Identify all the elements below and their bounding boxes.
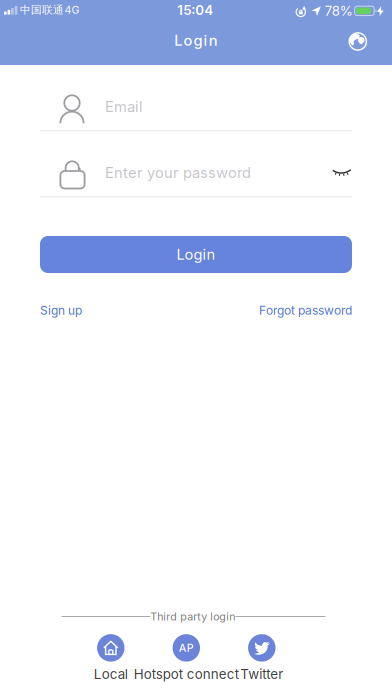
staticText: Hotspot connect	[134, 666, 239, 682]
button[interactable]: Forgot password	[259, 303, 352, 317]
staticText: Email	[105, 98, 143, 115]
staticText: Login	[174, 32, 218, 49]
staticText: Twitter	[240, 666, 283, 682]
button[interactable]: Local	[94, 634, 128, 682]
button[interactable]: Login	[40, 236, 352, 273]
button[interactable]: Show password	[333, 169, 351, 177]
button[interactable]: Hotspot connect	[134, 634, 239, 682]
button[interactable]: Sign up	[40, 303, 82, 317]
button[interactable]: Change language	[348, 32, 367, 51]
staticText: Login	[176, 246, 215, 263]
button[interactable]: Twitter	[240, 634, 283, 682]
staticText: AP	[179, 642, 194, 654]
staticText: Sign up	[40, 303, 82, 317]
staticText: 78%	[325, 3, 353, 19]
staticText: Enter your password	[105, 164, 251, 181]
staticText: 15:04	[177, 2, 213, 18]
staticText: Third party login	[150, 610, 235, 623]
staticText: 4G	[64, 4, 79, 16]
staticText: 中国联通	[20, 3, 64, 16]
staticText: Local	[94, 666, 128, 682]
staticText: Forgot password	[259, 303, 352, 317]
